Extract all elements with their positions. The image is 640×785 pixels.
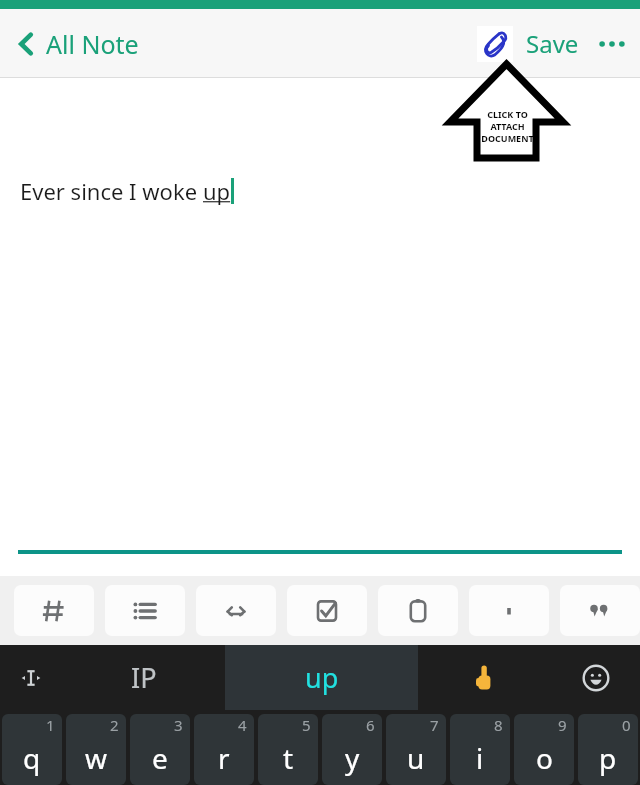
button[interactable]: 4 (194, 714, 254, 785)
staticText: u (407, 739, 425, 777)
button[interactable]: Quote (560, 585, 640, 636)
staticText: 3 (174, 715, 183, 735)
staticText: up (203, 176, 231, 206)
button[interactable]: Emoji (552, 645, 640, 710)
button[interactable]: Bullet list (105, 585, 185, 636)
staticText: DOCUMENT (481, 132, 534, 144)
button[interactable]: 9 (514, 714, 574, 785)
button[interactable]: IP (62, 645, 225, 710)
staticText: r (218, 739, 230, 777)
staticText: t (283, 739, 294, 777)
staticText: ATTACH (490, 120, 525, 132)
staticText: 0 (622, 715, 631, 735)
button[interactable]: 2 (66, 714, 126, 785)
button[interactable]: 8 (450, 714, 510, 785)
staticText: o (536, 739, 553, 777)
staticText: Save (526, 27, 579, 60)
button[interactable]: Divider (469, 585, 549, 636)
staticText: 1 (46, 715, 55, 735)
button[interactable]: Heading (14, 585, 94, 636)
staticText: CLICK TO (487, 108, 528, 120)
staticText: 7 (430, 715, 439, 735)
button[interactable]: Attach document (477, 26, 513, 62)
button[interactable]: Checklist (287, 585, 367, 636)
button[interactable]: 0 (578, 714, 638, 785)
button[interactable]: Clipboard (378, 585, 458, 636)
button[interactable]: More options (596, 28, 628, 60)
staticText: All Note (46, 27, 139, 61)
staticText: Ever since I woke (20, 176, 203, 206)
staticText: q (23, 739, 41, 777)
staticText: 6 (366, 715, 375, 735)
staticText: IP (131, 659, 157, 696)
button[interactable]: Gesture typing (418, 645, 552, 710)
staticText: w (85, 739, 108, 777)
button[interactable]: 3 (130, 714, 190, 785)
staticText: 9 (558, 715, 567, 735)
button[interactable]: 6 (322, 714, 382, 785)
button[interactable]: Code (196, 585, 276, 636)
staticText: i (476, 739, 484, 777)
button[interactable]: Save (521, 19, 584, 68)
staticText: 4 (238, 715, 247, 735)
staticText: up (305, 659, 339, 696)
button[interactable]: 7 (386, 714, 446, 785)
button[interactable]: 5 (258, 714, 318, 785)
button[interactable]: up (225, 645, 418, 710)
button[interactable]: Move cursor (0, 645, 62, 710)
staticText: p (599, 739, 617, 777)
staticText: 2 (110, 715, 119, 735)
staticText: 8 (494, 715, 503, 735)
staticText: 5 (302, 715, 311, 735)
button[interactable]: 1 (2, 714, 62, 785)
staticText: e (152, 739, 168, 777)
staticText: y (345, 739, 360, 777)
button[interactable]: All Note (14, 19, 143, 69)
